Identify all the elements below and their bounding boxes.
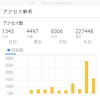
staticText: アクセス数	[3, 20, 23, 26]
staticText: 月別	[58, 39, 66, 44]
staticText: 累計	[75, 35, 81, 39]
staticText: 4497	[26, 28, 38, 35]
staticText: 500	[7, 90, 13, 96]
staticText: 週別	[33, 39, 41, 44]
button[interactable]: 年別	[75, 39, 100, 44]
staticText: 227448	[75, 28, 93, 35]
staticText: 3000	[5, 55, 13, 61]
button[interactable]: 週別	[25, 39, 50, 44]
staticText: 閲覧数	[12, 48, 24, 53]
staticText: 1343	[2, 28, 14, 35]
button[interactable]: 月別	[50, 39, 75, 44]
staticText: 9:41 mysite.example.jp	[28, 1, 71, 5]
staticText: アクセス解析	[3, 9, 33, 14]
staticText: 今月	[51, 35, 57, 39]
staticText: 今週	[26, 35, 32, 39]
staticText: 6006	[51, 28, 63, 35]
button[interactable]: 日別	[0, 39, 25, 44]
staticText: 1000	[5, 83, 13, 89]
staticText: 年別	[83, 39, 91, 44]
staticText: 今日	[2, 35, 8, 39]
staticText: 日別	[8, 39, 16, 44]
staticText: 1500	[5, 76, 13, 82]
staticText: 2000	[5, 69, 13, 75]
button[interactable]: アクセス解析	[3, 9, 33, 14]
staticText: 2500	[5, 62, 13, 68]
